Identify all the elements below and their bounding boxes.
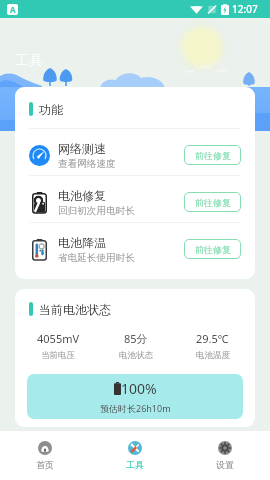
staticText: 省电延长使用时长 bbox=[58, 252, 135, 264]
button[interactable]: 网络测速 bbox=[15, 129, 255, 176]
staticText: 85分 bbox=[124, 331, 148, 346]
staticText: 电池温度 bbox=[196, 350, 230, 361]
staticText: 网络测速 bbox=[58, 141, 106, 156]
staticText: 预估时长26h10m bbox=[100, 402, 171, 414]
button[interactable]: 电池降温 bbox=[15, 223, 255, 269]
staticText: 当前电压 bbox=[41, 350, 75, 361]
staticText: 查看网络速度 bbox=[58, 158, 116, 170]
staticText: 设置 bbox=[216, 459, 234, 470]
staticText: 12:07 bbox=[232, 2, 258, 16]
button[interactable]: Tools bbox=[90, 430, 180, 480]
staticText: 前往修复 bbox=[195, 244, 231, 255]
staticText: 回归初次用电时长 bbox=[58, 205, 135, 217]
staticText: 当前电池状态 bbox=[39, 302, 111, 317]
button[interactable]: 前往修复 bbox=[184, 239, 241, 259]
staticText: 功能 bbox=[39, 102, 63, 117]
button[interactable]: Settings bbox=[180, 430, 270, 480]
button[interactable]: 前往修复 bbox=[184, 145, 241, 165]
other: Settings bbox=[218, 441, 232, 455]
other: Home bbox=[38, 441, 52, 455]
staticText: 电池修复 bbox=[58, 188, 106, 203]
staticText: 工具 bbox=[126, 459, 144, 470]
staticText: 电池降温 bbox=[58, 235, 106, 250]
staticText: 工具 bbox=[15, 52, 43, 70]
button[interactable]: 电池修复 bbox=[15, 176, 255, 223]
other: Tools bbox=[128, 441, 142, 455]
button[interactable]: 前往修复 bbox=[184, 192, 241, 212]
staticText: 前往修复 bbox=[195, 197, 231, 208]
staticText: A bbox=[10, 4, 16, 15]
staticText: 电池状态 bbox=[119, 350, 153, 361]
button[interactable]: Home bbox=[0, 430, 90, 480]
staticText: 100% bbox=[121, 379, 157, 398]
staticText: 首页 bbox=[36, 459, 54, 470]
staticText: 4055mV bbox=[37, 331, 80, 346]
staticText: 前往修复 bbox=[195, 150, 231, 161]
staticText: 29.5℃ bbox=[196, 331, 229, 346]
